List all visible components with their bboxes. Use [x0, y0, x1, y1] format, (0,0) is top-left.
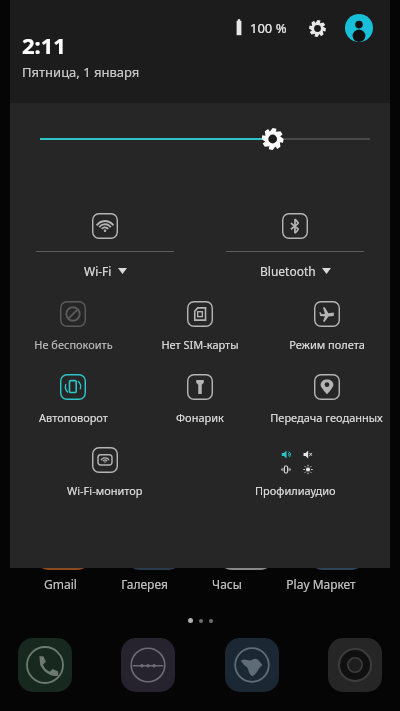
staticText: Автоповорот [39, 410, 108, 425]
staticText: Bluetooth [260, 263, 316, 279]
staticText: Не беспокоить [34, 337, 113, 352]
staticText: Передача геоданных [270, 410, 383, 425]
staticText: Пятница, 1 января [22, 63, 140, 81]
staticText: Wi-Fi [84, 263, 112, 279]
staticText: 100 % [250, 19, 287, 37]
button[interactable]: Wi-Fi-монитор [10, 447, 200, 498]
button[interactable]: App [121, 638, 175, 692]
button[interactable]: App [18, 638, 72, 692]
staticText: Фонарик [176, 410, 224, 425]
button[interactable]: Передача геоданных [263, 374, 390, 425]
staticText: Режим полета [289, 337, 365, 352]
button[interactable] [218, 548, 274, 570]
staticText: 2:11 [22, 30, 66, 60]
button[interactable]: Автоповорот [10, 374, 136, 425]
button[interactable]: Gmail [44, 576, 77, 592]
button[interactable] [309, 548, 365, 570]
button[interactable]: Часы [212, 576, 242, 592]
button[interactable]: App [225, 638, 279, 692]
staticText: Нет SIM-карты [161, 337, 239, 352]
button[interactable]: Wi-Fi [10, 213, 200, 279]
button[interactable]: Нет SIM-карты [136, 301, 263, 352]
button[interactable]: User profile [345, 14, 373, 42]
button[interactable]: Галерея [121, 576, 168, 592]
button[interactable]: Режим полета [263, 301, 390, 352]
button[interactable] [35, 548, 91, 570]
button[interactable]: App [328, 638, 382, 692]
button[interactable]: Профилиаудио [200, 447, 390, 498]
button[interactable] [126, 548, 182, 570]
button[interactable]: Bluetooth [200, 213, 390, 279]
button[interactable]: Brightness [10, 117, 390, 161]
button[interactable]: Play Маркет [286, 576, 356, 592]
staticText: Wi-Fi-монитор [67, 483, 143, 498]
staticText: Профилиаудио [255, 483, 336, 498]
button[interactable]: Не беспокоить [10, 301, 136, 352]
button[interactable]: Фонарик [136, 374, 263, 425]
button[interactable]: Settings [303, 14, 331, 42]
